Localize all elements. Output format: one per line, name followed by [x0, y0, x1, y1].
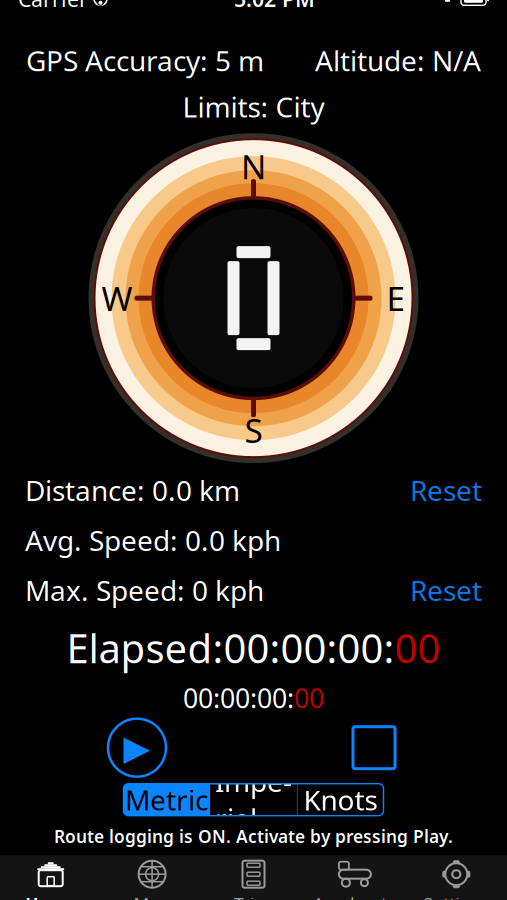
staticText: 00 — [394, 621, 440, 674]
staticText: Carrier — [18, 0, 88, 13]
staticText: Avg. Speed: 0.0 kph — [25, 522, 281, 559]
button[interactable]: Imperial — [209, 784, 297, 816]
staticText: 5:02 PM — [234, 0, 315, 13]
button[interactable]: Settings — [406, 856, 507, 900]
staticText: Altitude: N/A — [315, 42, 481, 79]
button[interactable]: Trips — [203, 856, 304, 900]
staticText: E — [386, 276, 405, 320]
staticText: Imperial — [215, 762, 292, 837]
staticText: W — [101, 276, 132, 320]
staticText: Reset — [410, 572, 482, 609]
staticText: 00:00:00: — [183, 680, 294, 716]
button[interactable]: Reset — [410, 572, 482, 609]
staticText: Accelerate — [313, 893, 397, 900]
staticText: Home — [25, 893, 76, 900]
staticText: 00 — [294, 680, 324, 716]
button[interactable]: Accelerate — [304, 856, 406, 900]
staticText: Elapsed:00:00:00: — [66, 621, 394, 674]
staticText: Trips — [234, 893, 273, 900]
staticText: Distance: 0.0 km — [25, 472, 240, 509]
button[interactable]: Metric — [123, 784, 209, 816]
button[interactable]: Stop — [342, 716, 406, 780]
button[interactable]: Home — [0, 856, 101, 900]
staticText: Route logging is ON. Activate by pressin… — [54, 825, 453, 848]
staticText: Reset — [410, 472, 482, 509]
staticText: Knots — [303, 781, 377, 818]
staticText: N — [241, 144, 266, 188]
button[interactable]: Play — [101, 716, 173, 780]
staticText: S — [244, 408, 262, 452]
staticText: Settings — [423, 893, 489, 900]
staticText: Map — [134, 893, 171, 900]
staticText: GPS Accuracy: 5 m — [26, 42, 264, 79]
button[interactable]: Knots — [297, 784, 383, 816]
button[interactable]: Reset — [410, 472, 482, 509]
button[interactable]: Map — [101, 856, 203, 900]
staticText: Metric — [125, 781, 208, 818]
staticText: Limits: City — [182, 88, 324, 125]
staticText: ▶ — [123, 728, 150, 767]
staticText: Max. Speed: 0 kph — [25, 572, 264, 609]
